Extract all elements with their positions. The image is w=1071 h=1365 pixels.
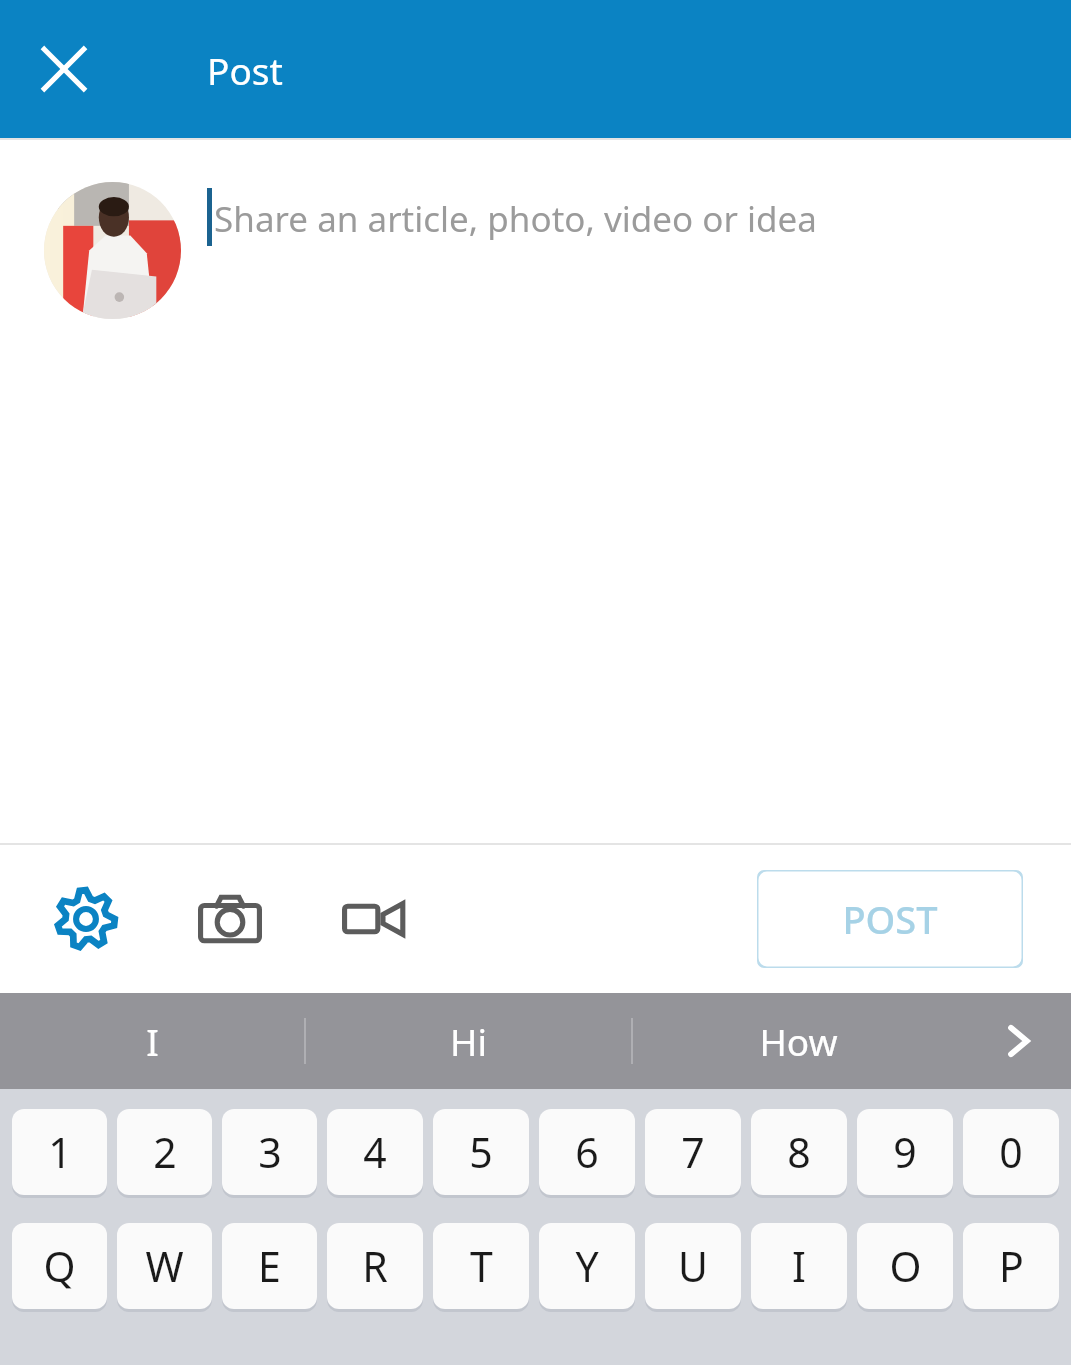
button[interactable]: Q [12, 1223, 107, 1309]
staticText: 3 [258, 1124, 282, 1180]
button[interactable]: T [433, 1223, 529, 1309]
staticText: Q [43, 1238, 76, 1294]
staticText: Y [575, 1238, 599, 1294]
button[interactable]: W [117, 1223, 212, 1309]
button[interactable]: POST [757, 870, 1023, 968]
button[interactable]: P [963, 1223, 1059, 1309]
staticText: O [889, 1238, 922, 1294]
button[interactable]: U [645, 1223, 741, 1309]
button[interactable]: I [751, 1223, 847, 1309]
staticText: W [145, 1238, 184, 1294]
staticText: R [362, 1238, 388, 1294]
staticText: 9 [893, 1124, 917, 1180]
staticText: U [678, 1238, 708, 1294]
staticText: 1 [48, 1124, 72, 1180]
staticText: I [146, 1016, 159, 1066]
button[interactable]: E [222, 1223, 317, 1309]
button[interactable]: Hi [306, 993, 631, 1089]
staticText: Hi [450, 1016, 487, 1066]
button[interactable]: 9 [857, 1109, 953, 1195]
button[interactable]: 7 [645, 1109, 741, 1195]
button[interactable]: 5 [433, 1109, 529, 1195]
staticText: 4 [363, 1124, 387, 1180]
staticText: 2 [153, 1124, 177, 1180]
staticText: P [999, 1238, 1024, 1294]
staticText: POST [842, 893, 938, 945]
staticText: 5 [469, 1124, 493, 1180]
button[interactable]: Settings [36, 869, 136, 969]
button[interactable]: Profile photo [44, 182, 181, 319]
button[interactable]: More suggestions [964, 993, 1071, 1089]
button[interactable]: I [0, 993, 304, 1089]
staticText: How [759, 1016, 838, 1066]
staticText: 6 [575, 1124, 599, 1180]
button[interactable]: 6 [539, 1109, 635, 1195]
staticText: 8 [787, 1124, 811, 1180]
staticText: E [258, 1238, 281, 1294]
staticText: Post [207, 45, 283, 95]
button[interactable]: 2 [117, 1109, 212, 1195]
button[interactable]: 4 [327, 1109, 423, 1195]
staticText: T [470, 1238, 493, 1294]
staticText: Share an article, photo, video or idea [214, 195, 817, 243]
staticText: I [792, 1238, 806, 1294]
button[interactable]: R [327, 1223, 423, 1309]
button[interactable]: Close [22, 27, 106, 111]
button[interactable]: 0 [963, 1109, 1059, 1195]
button[interactable]: O [857, 1223, 953, 1309]
button[interactable]: 8 [751, 1109, 847, 1195]
button[interactable]: How [633, 993, 964, 1089]
button[interactable]: Video [324, 869, 424, 969]
button[interactable]: 3 [222, 1109, 317, 1195]
button[interactable]: Share an article, photo, video or idea [214, 184, 1071, 254]
staticText: 0 [999, 1124, 1023, 1180]
button[interactable]: Camera [180, 869, 280, 969]
button[interactable]: 1 [12, 1109, 107, 1195]
staticText: 7 [681, 1124, 705, 1180]
button[interactable]: Y [539, 1223, 635, 1309]
